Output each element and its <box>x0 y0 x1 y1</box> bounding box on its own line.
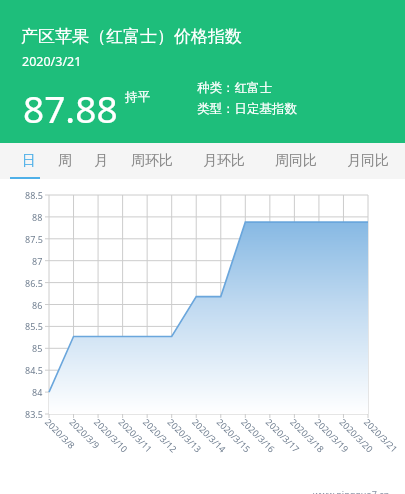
staticText: 87.88 <box>23 83 118 133</box>
button[interactable]: 月同比 <box>338 143 398 179</box>
staticText: 持平 <box>125 89 150 105</box>
button[interactable]: 周 <box>52 143 78 179</box>
staticText: 月 <box>94 152 108 170</box>
button[interactable]: 周同比 <box>266 143 326 179</box>
staticText: 类型：日定基指数 <box>197 101 297 117</box>
button[interactable]: 月 <box>88 143 114 179</box>
staticText: 产区苹果（红富士）价格指数 <box>21 26 242 47</box>
staticText: 月同比 <box>347 152 389 170</box>
staticText: 日 <box>22 152 36 170</box>
staticText: 周 <box>58 152 72 170</box>
staticText: 周同比 <box>275 152 317 170</box>
staticText: 月环比 <box>203 152 245 170</box>
button[interactable]: 月环比 <box>194 143 254 179</box>
staticText: 种类：红富士 <box>197 80 272 96</box>
staticText: 周环比 <box>131 152 173 170</box>
button[interactable]: 日 <box>16 143 42 179</box>
staticText: 2020/3/21 <box>22 53 82 70</box>
button[interactable]: 周环比 <box>122 143 182 179</box>
